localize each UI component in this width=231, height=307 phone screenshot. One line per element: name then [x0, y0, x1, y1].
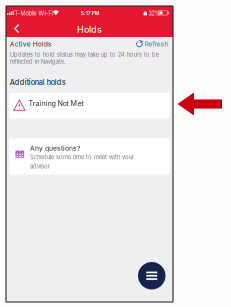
- staticText: Schedule some time to meet with your: [30, 153, 134, 161]
- staticText: Additional holds: [10, 78, 66, 87]
- staticText: Holds: [77, 24, 102, 35]
- staticText: Active Holds: [10, 40, 52, 48]
- button[interactable]: Refresh: [134, 38, 171, 50]
- staticText: advisor: [30, 163, 50, 170]
- staticText: Any questions?: [30, 144, 80, 152]
- staticText: 5:17 PM: [81, 10, 100, 16]
- button[interactable]: Training Not Met: [9, 93, 170, 118]
- button[interactable]: Any questions?: [9, 138, 170, 174]
- staticText: reflected in Navigate.: [10, 58, 66, 65]
- staticText: Updates to hold status may take up to 24…: [10, 51, 159, 58]
- button[interactable]: Back: [10, 21, 24, 36]
- staticText: 32%: [148, 10, 159, 17]
- staticText: Training Not Met: [28, 99, 83, 108]
- staticText: T-Mobile Wi-Fi: [15, 10, 53, 17]
- staticText: Refresh: [145, 40, 169, 48]
- button[interactable]: Menu: [138, 262, 165, 289]
